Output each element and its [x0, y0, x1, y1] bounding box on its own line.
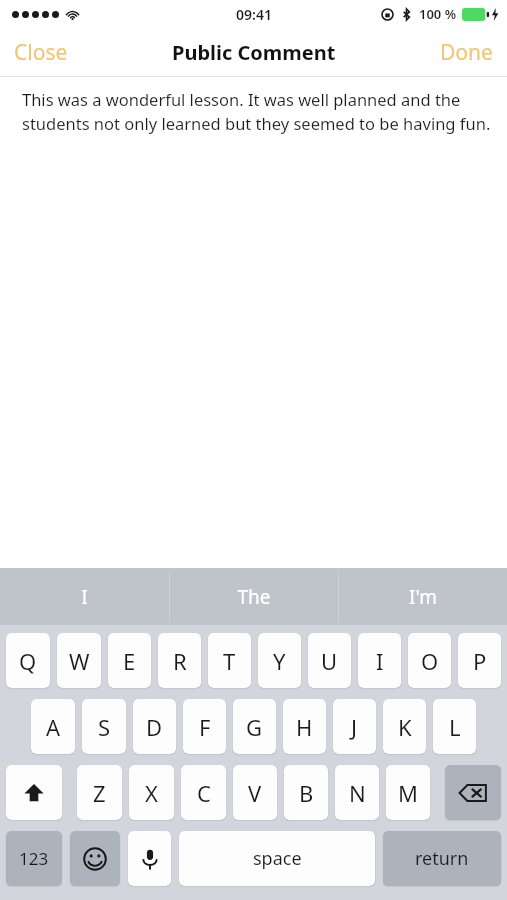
button[interactable]: The: [170, 568, 338, 625]
staticText: Close: [14, 38, 68, 67]
button[interactable]: S: [82, 699, 126, 754]
staticText: Y: [273, 646, 286, 676]
button[interactable]: F: [183, 699, 226, 754]
staticText: P: [473, 646, 487, 676]
button[interactable]: J: [333, 699, 376, 754]
staticText: G: [246, 712, 263, 742]
staticText: 123: [19, 847, 49, 870]
button[interactable]: Emoji: [70, 831, 120, 886]
staticText: I: [81, 584, 88, 610]
button[interactable]: Backspace: [445, 765, 501, 820]
staticText: O: [421, 646, 439, 676]
button[interactable]: C: [181, 765, 226, 820]
staticText: M: [398, 778, 418, 808]
staticText: L: [449, 712, 461, 742]
staticText: F: [199, 712, 211, 742]
button[interactable]: A: [31, 699, 75, 754]
button[interactable]: I'm: [339, 568, 507, 625]
button[interactable]: B: [284, 765, 328, 820]
staticText: K: [398, 712, 412, 742]
staticText: 09:41: [236, 5, 272, 24]
button[interactable]: Shift: [6, 765, 62, 820]
button[interactable]: Dictation: [128, 831, 171, 886]
button[interactable]: X: [129, 765, 174, 820]
button[interactable]: I: [358, 633, 401, 688]
button[interactable]: K: [383, 699, 426, 754]
button[interactable]: G: [233, 699, 276, 754]
button[interactable]: R: [158, 633, 201, 688]
staticText: X: [145, 778, 158, 808]
staticText: Q: [19, 646, 37, 676]
staticText: I'm: [409, 584, 437, 610]
staticText: N: [349, 778, 366, 808]
staticText: return: [415, 846, 469, 871]
staticText: S: [98, 712, 111, 742]
button[interactable]: O: [408, 633, 451, 688]
staticText: D: [146, 712, 163, 742]
button[interactable]: return: [383, 831, 501, 886]
staticText: The: [237, 584, 271, 610]
staticText: A: [46, 712, 61, 742]
staticText: T: [223, 646, 236, 676]
button[interactable]: M: [386, 765, 430, 820]
button[interactable]: D: [133, 699, 176, 754]
button[interactable]: P: [458, 633, 501, 688]
staticText: Public Comment: [172, 39, 336, 66]
button[interactable]: Close: [0, 30, 82, 75]
button[interactable]: V: [233, 765, 277, 820]
button[interactable]: Z: [77, 765, 122, 820]
staticText: V: [248, 778, 262, 808]
button[interactable]: 123: [6, 831, 62, 886]
button[interactable]: W: [57, 633, 101, 688]
staticText: B: [299, 778, 314, 808]
staticText: H: [296, 712, 313, 742]
button[interactable]: L: [433, 699, 476, 754]
button[interactable]: N: [335, 765, 379, 820]
button[interactable]: Done: [426, 30, 507, 75]
staticText: R: [173, 646, 187, 676]
staticText: J: [351, 712, 358, 742]
button[interactable]: Q: [6, 633, 50, 688]
button[interactable]: I: [0, 568, 169, 625]
button[interactable]: E: [108, 633, 151, 688]
staticText: I: [376, 646, 384, 676]
staticText: Done: [440, 38, 493, 67]
staticText: W: [69, 646, 90, 676]
staticText: E: [123, 646, 136, 676]
staticText: 100 %: [419, 5, 457, 23]
staticText: space: [253, 846, 302, 871]
staticText: C: [197, 778, 211, 808]
button[interactable]: H: [283, 699, 326, 754]
staticText: Z: [93, 778, 106, 808]
button[interactable]: T: [208, 633, 251, 688]
button[interactable]: U: [308, 633, 351, 688]
staticText: U: [321, 646, 338, 676]
button[interactable]: Y: [258, 633, 301, 688]
button[interactable]: space: [179, 831, 375, 886]
staticText: This was a wonderful lesson. It was well…: [22, 88, 493, 135]
